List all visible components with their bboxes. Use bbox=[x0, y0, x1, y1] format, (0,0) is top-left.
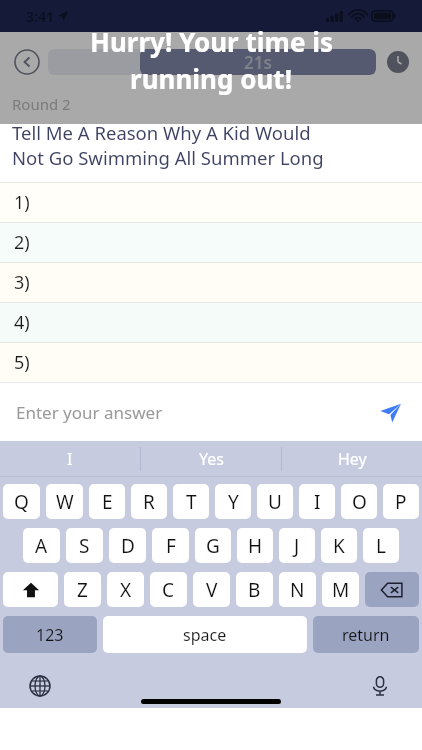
staticText: E bbox=[102, 489, 113, 515]
button[interactable]: P bbox=[383, 484, 419, 519]
button[interactable]: H bbox=[237, 528, 273, 563]
staticText: Y bbox=[228, 489, 239, 515]
staticText: M bbox=[332, 577, 350, 603]
button[interactable]: X bbox=[107, 572, 144, 607]
staticText: 5) bbox=[14, 350, 30, 375]
button[interactable]: I bbox=[0, 441, 140, 476]
button[interactable]: Shift bbox=[3, 572, 58, 607]
button[interactable]: D bbox=[109, 528, 146, 563]
staticText: J bbox=[294, 533, 300, 559]
staticText: B bbox=[248, 577, 261, 603]
button[interactable]: space bbox=[103, 616, 307, 653]
staticText: C bbox=[162, 577, 175, 603]
staticText: 4) bbox=[14, 310, 30, 335]
button[interactable]: L bbox=[363, 528, 399, 563]
staticText: 3) bbox=[14, 270, 30, 295]
staticText: 1) bbox=[14, 190, 30, 215]
staticText: S bbox=[79, 533, 90, 559]
button[interactable]: 3) bbox=[0, 263, 422, 302]
button[interactable]: V bbox=[193, 572, 230, 607]
button[interactable]: Hey bbox=[282, 441, 422, 476]
staticText: 3:41 bbox=[26, 7, 54, 26]
button[interactable]: 1) bbox=[0, 183, 422, 222]
button[interactable]: Y bbox=[215, 484, 251, 519]
staticText: 2) bbox=[14, 230, 30, 255]
button[interactable]: Timer bbox=[384, 48, 412, 76]
button[interactable]: G bbox=[195, 528, 231, 563]
button[interactable]: Enter your answer bbox=[0, 383, 422, 441]
button[interactable]: R bbox=[131, 484, 167, 519]
staticText: return bbox=[342, 624, 390, 646]
button[interactable]: Back bbox=[10, 45, 44, 79]
staticText: W bbox=[56, 489, 74, 515]
button[interactable]: Delete bbox=[365, 572, 419, 607]
staticText: Yes bbox=[199, 448, 224, 470]
staticText: H bbox=[248, 533, 263, 559]
button[interactable]: J bbox=[279, 528, 315, 563]
staticText: X bbox=[120, 577, 132, 603]
staticText: running out! bbox=[130, 61, 292, 96]
button[interactable]: Send bbox=[374, 396, 406, 428]
staticText: U bbox=[268, 489, 282, 515]
button[interactable]: K bbox=[321, 528, 357, 563]
button[interactable]: N bbox=[279, 572, 316, 607]
button[interactable]: M bbox=[322, 572, 359, 607]
staticText: Round 2 bbox=[12, 94, 71, 114]
staticText: N bbox=[290, 577, 305, 603]
staticText: I bbox=[67, 448, 73, 470]
button[interactable]: Z bbox=[64, 572, 101, 607]
staticText: 123 bbox=[36, 624, 64, 646]
staticText: space bbox=[183, 624, 227, 646]
button[interactable]: T bbox=[173, 484, 209, 519]
button[interactable]: Q bbox=[3, 484, 40, 519]
staticText: I bbox=[314, 489, 321, 515]
button[interactable]: B bbox=[236, 572, 273, 607]
staticText: Enter your answer bbox=[16, 401, 163, 424]
button[interactable]: Dictation bbox=[364, 670, 396, 702]
button[interactable]: 123 bbox=[3, 616, 97, 653]
staticText: Not Go Swimming All Summer Long bbox=[12, 145, 324, 170]
button[interactable]: W bbox=[46, 484, 83, 519]
staticText: G bbox=[206, 533, 220, 559]
button[interactable]: S bbox=[66, 528, 103, 563]
button[interactable]: return bbox=[313, 616, 419, 653]
button[interactable]: O bbox=[341, 484, 377, 519]
button[interactable]: 4) bbox=[0, 303, 422, 342]
button[interactable]: E bbox=[89, 484, 125, 519]
button[interactable]: A bbox=[23, 528, 60, 563]
staticText: K bbox=[333, 533, 345, 559]
button[interactable]: I bbox=[299, 484, 335, 519]
button[interactable]: F bbox=[152, 528, 189, 563]
staticText: T bbox=[186, 489, 197, 515]
staticText: Hurry! Your time is bbox=[90, 24, 333, 59]
staticText: P bbox=[395, 489, 407, 515]
staticText: V bbox=[206, 577, 218, 603]
staticText: Q bbox=[14, 489, 29, 515]
button[interactable]: U bbox=[257, 484, 293, 519]
staticText: R bbox=[143, 489, 155, 515]
staticText: Tell Me A Reason Why A Kid Would bbox=[12, 120, 311, 145]
button[interactable]: 2) bbox=[0, 223, 422, 262]
button[interactable]: 5) bbox=[0, 343, 422, 382]
button[interactable]: Yes bbox=[141, 441, 281, 476]
staticText: D bbox=[121, 533, 135, 559]
staticText: Z bbox=[77, 577, 88, 603]
staticText: L bbox=[376, 533, 386, 559]
staticText: Hey bbox=[338, 448, 367, 470]
button[interactable]: C bbox=[150, 572, 187, 607]
staticText: F bbox=[166, 533, 176, 559]
staticText: 21s bbox=[244, 51, 272, 74]
button[interactable]: Change keyboard bbox=[24, 670, 56, 702]
staticText: A bbox=[35, 533, 48, 559]
staticText: O bbox=[352, 489, 367, 515]
